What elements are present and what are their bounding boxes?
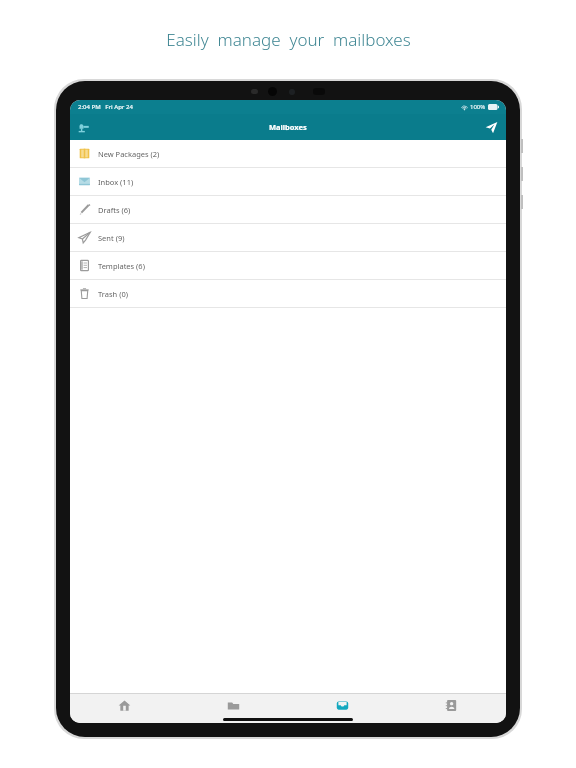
staticText: Mailboxes [269, 122, 307, 132]
staticText: Inbox (11) [98, 177, 134, 187]
staticText: Drafts (6) [98, 205, 131, 215]
button[interactable]: Contacts [397, 694, 506, 723]
staticText: Templates (6) [98, 261, 145, 271]
button[interactable]: Compose [481, 117, 501, 137]
button[interactable]: Home [70, 694, 179, 723]
staticText: 100% [470, 103, 486, 111]
button[interactable]: Templates (6) [70, 252, 506, 279]
staticText: Sent (9) [98, 233, 125, 243]
button[interactable]: Sent (9) [70, 224, 506, 251]
button[interactable]: Mailboxes [288, 694, 397, 723]
button[interactable]: Trash (0) [70, 280, 506, 307]
button[interactable]: Folders [179, 694, 288, 723]
staticText: Easily manage your mailboxes [166, 28, 411, 51]
button[interactable]: Mailboxes [74, 117, 94, 137]
button[interactable]: Drafts (6) [70, 196, 506, 223]
staticText: New Packages (2) [98, 149, 160, 159]
staticText: 2:04 PM Fri Apr 24 [78, 103, 133, 111]
button[interactable]: New Packages (2) [70, 140, 506, 167]
button[interactable]: Inbox (11) [70, 168, 506, 195]
staticText: Trash (0) [98, 289, 128, 299]
